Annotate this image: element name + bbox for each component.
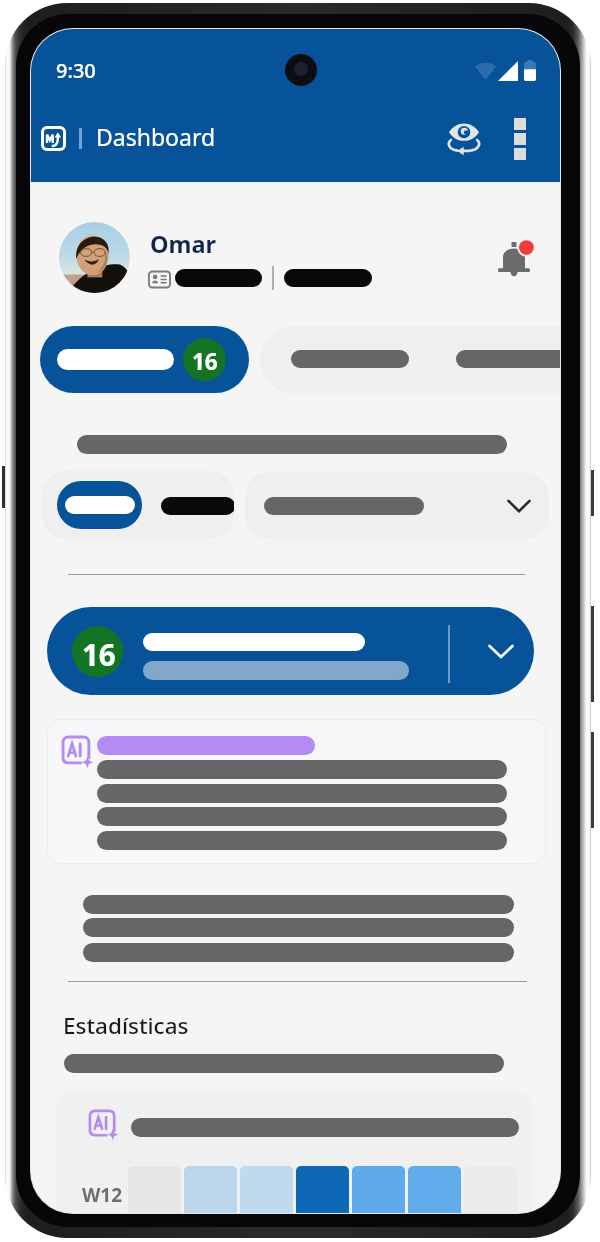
staticText: 9:30 [56,57,96,84]
button[interactable]: 16 [40,326,249,393]
button[interactable] [42,471,234,539]
button[interactable]: Notifications [488,234,540,286]
staticText: 16 [82,634,116,674]
button[interactable] [260,326,560,393]
button[interactable] [245,472,549,539]
staticText: Omar [150,228,217,260]
button[interactable]: More options [496,115,544,163]
staticText: 16 [192,346,218,377]
staticText: Dashboard [96,121,216,152]
button[interactable]: 16 [47,607,534,695]
staticText: W12 [82,1182,123,1208]
button[interactable]: Preview mode [440,114,488,162]
staticText: Estadísticas [63,1010,189,1041]
